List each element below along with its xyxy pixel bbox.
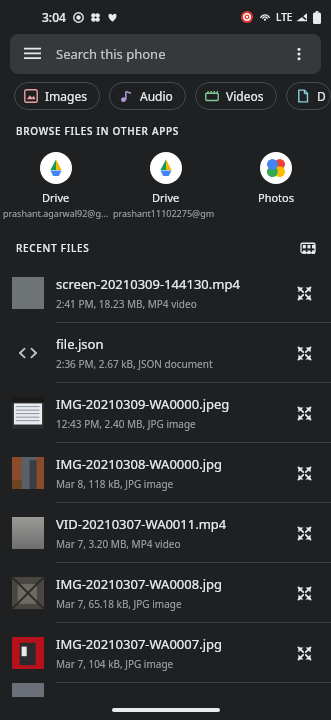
staticText: IMG-20210307-WA0007.jpg: [56, 635, 222, 653]
button[interactable]: Videos: [195, 82, 277, 110]
staticText: screen-20210309-144130.mp4: [56, 275, 240, 293]
button[interactable]: Expand IMG-20210307-WA0008.jpg: [291, 580, 317, 606]
staticText: Images: [45, 88, 87, 104]
staticText: Photos: [258, 190, 295, 205]
button[interactable]: screen-20210309-144130.mp4: [0, 263, 331, 323]
button[interactable]: Images: [14, 82, 100, 110]
button[interactable]: Photos: [221, 152, 331, 205]
staticText: IMG-20210309-WA0000.jpeg: [56, 395, 230, 413]
button[interactable]: Drive: [0, 152, 111, 219]
staticText: BROWSE FILES IN OTHER APPS: [16, 124, 179, 138]
staticText: IMG-20210308-WA0000.jpg: [56, 455, 222, 473]
button[interactable]: VID-20210307-WA0011.mp4: [0, 503, 331, 563]
staticText: prashant11102275@gm…: [113, 207, 219, 219]
other: Menu: [24, 46, 41, 63]
button[interactable]: IMG-20210308-WA0000.jpg: [0, 443, 331, 503]
staticText: prashant.agarwal92@g…: [3, 207, 109, 219]
button[interactable]: Expand screen-20210309-144130.mp4: [291, 280, 317, 306]
staticText: Mar 7, 3.20 MB, MP4 video: [56, 537, 181, 551]
staticText: Search this phone: [56, 45, 166, 63]
staticText: Mar 7, 104 kB, JPG image: [56, 657, 174, 671]
button[interactable]: Audio: [109, 82, 186, 110]
staticText: IMG-20210307-WA0008.jpg: [56, 575, 222, 593]
staticText: VID-20210307-WA0011.mp4: [56, 515, 227, 533]
button[interactable]: Drive: [111, 152, 221, 219]
button[interactable]: Expand file.json: [291, 340, 317, 366]
staticText: 3:04: [42, 9, 66, 25]
staticText: Drive: [152, 190, 180, 205]
button[interactable]: Expand VID-20210307-WA0011.mp4: [291, 520, 317, 546]
button[interactable]: IMG-20210307-WA0008.jpg: [0, 563, 331, 623]
button[interactable]: IMG-20210309-WA0000.jpeg: [0, 383, 331, 443]
staticText: Drive: [42, 190, 70, 205]
button[interactable]: Expand IMG-20210309-WA0000.jpeg: [291, 400, 317, 426]
button[interactable]: Grid view: [297, 237, 319, 259]
staticText: Mar 7, 65.18 kB, JPG image: [56, 597, 182, 611]
staticText: Mar 8, 118 kB, JPG image: [56, 477, 174, 491]
staticText: Videos: [226, 88, 264, 104]
staticText: RECENT FILES: [16, 241, 90, 255]
staticText: Audio: [140, 88, 173, 104]
staticText: 2:36 PM, 2.67 kB, JSON document: [56, 357, 213, 371]
button[interactable]: Docum: [286, 82, 331, 110]
button[interactable]: Expand IMG-20210307-WA0007.jpg: [291, 640, 317, 666]
staticText: file.json: [56, 335, 104, 353]
staticText: 12:43 PM, 2.40 MB, JPG image: [56, 417, 196, 431]
staticText: LTE: [276, 10, 293, 24]
button[interactable]: file.json: [0, 323, 331, 383]
button[interactable]: IMG-20210307-WA0007.jpg: [0, 623, 331, 683]
button[interactable]: Expand IMG-20210308-WA0000.jpg: [291, 460, 317, 486]
staticText: 2:41 PM, 18.23 MB, MP4 video: [56, 297, 197, 311]
button[interactable]: Menu: [10, 34, 321, 74]
other: More options: [291, 46, 307, 62]
